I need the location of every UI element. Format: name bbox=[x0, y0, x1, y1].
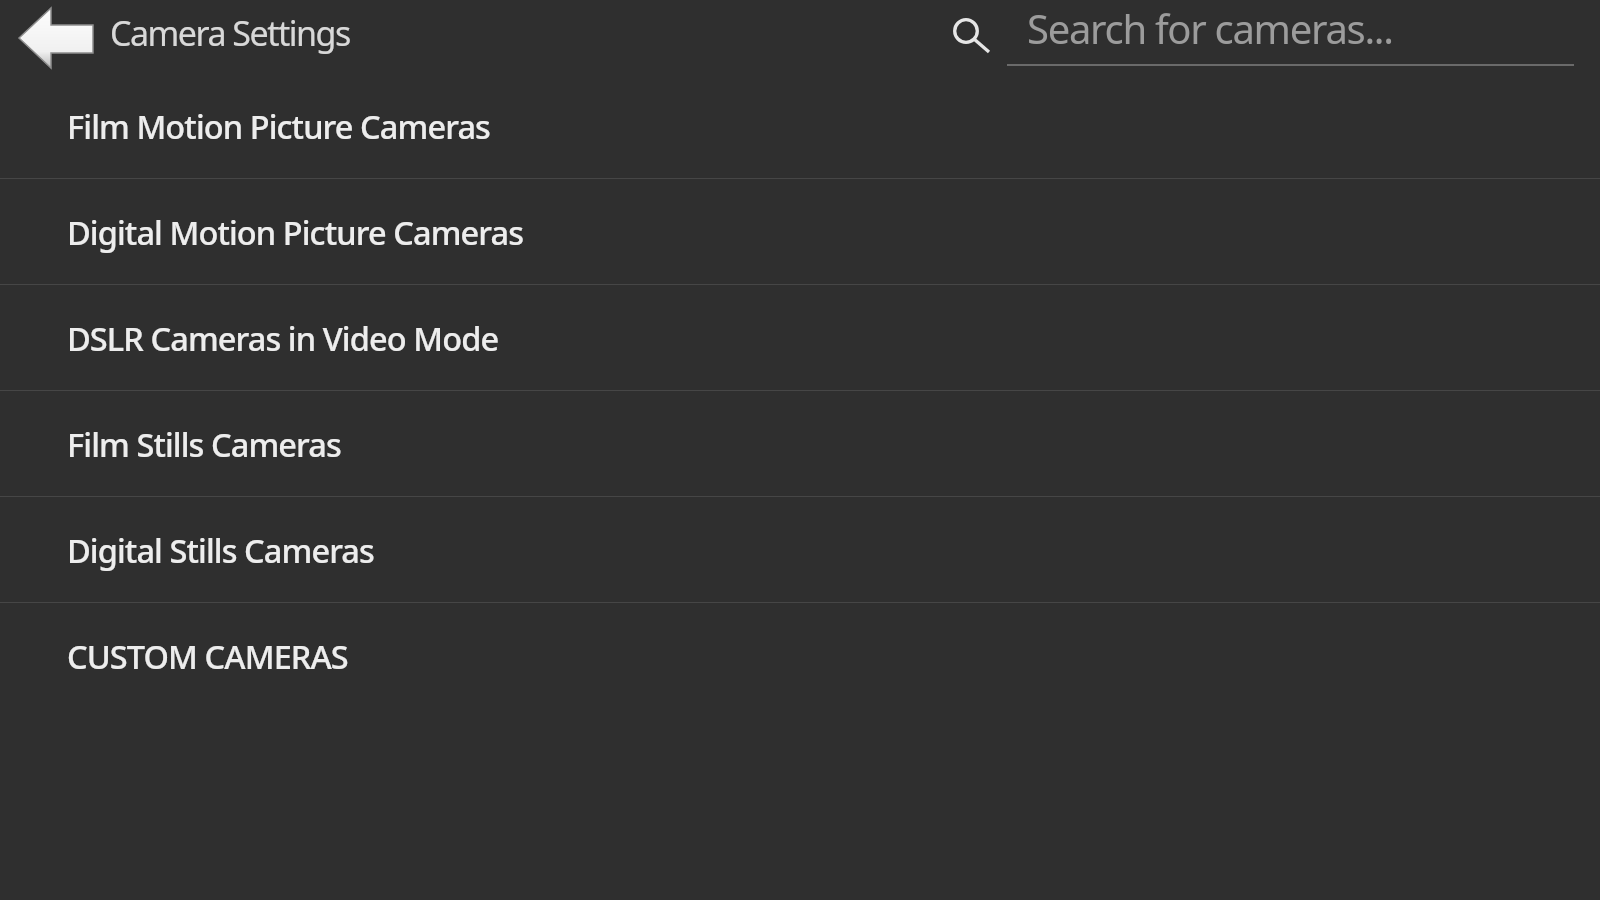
staticText: Digital Stills Cameras bbox=[67, 528, 374, 572]
button[interactable]: Digital Stills Cameras bbox=[0, 497, 1600, 602]
button[interactable]: Film Stills Cameras bbox=[0, 391, 1600, 496]
staticText: DSLR Cameras in Video Mode bbox=[67, 316, 499, 360]
staticText: CUSTOM CAMERAS bbox=[67, 634, 348, 678]
staticText: Film Stills Cameras bbox=[67, 422, 341, 466]
button[interactable]: Digital Motion Picture Cameras bbox=[0, 179, 1600, 284]
staticText: Search for cameras... bbox=[1027, 1, 1393, 55]
button[interactable] bbox=[938, 2, 1002, 70]
button[interactable]: CUSTOM CAMERAS bbox=[0, 603, 1600, 708]
button[interactable]: Film Motion Picture Cameras bbox=[0, 73, 1600, 178]
staticText: Camera Settings bbox=[110, 10, 350, 56]
button[interactable]: Search for cameras... bbox=[1007, 0, 1574, 70]
button[interactable]: DSLR Cameras in Video Mode bbox=[0, 285, 1600, 390]
staticText: Digital Motion Picture Cameras bbox=[67, 210, 524, 254]
button[interactable] bbox=[12, 2, 98, 72]
staticText: Film Motion Picture Cameras bbox=[67, 104, 490, 148]
